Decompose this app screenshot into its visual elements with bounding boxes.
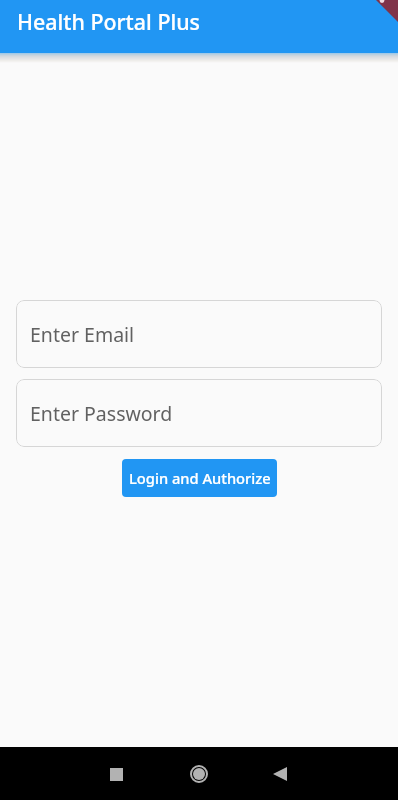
staticText: Health Portal Plus [17,7,201,36]
staticText: Enter Password [30,400,173,427]
button[interactable]: Enter Email [16,300,382,368]
staticText: Login and Authorize [129,468,271,488]
button[interactable]: Back [256,750,304,798]
staticText: Enter Email [30,321,135,348]
button[interactable]: Home [175,750,223,798]
button[interactable]: Recent apps [92,750,140,798]
button[interactable]: Enter Password [16,379,382,447]
button[interactable]: Login and Authorize [122,459,277,497]
